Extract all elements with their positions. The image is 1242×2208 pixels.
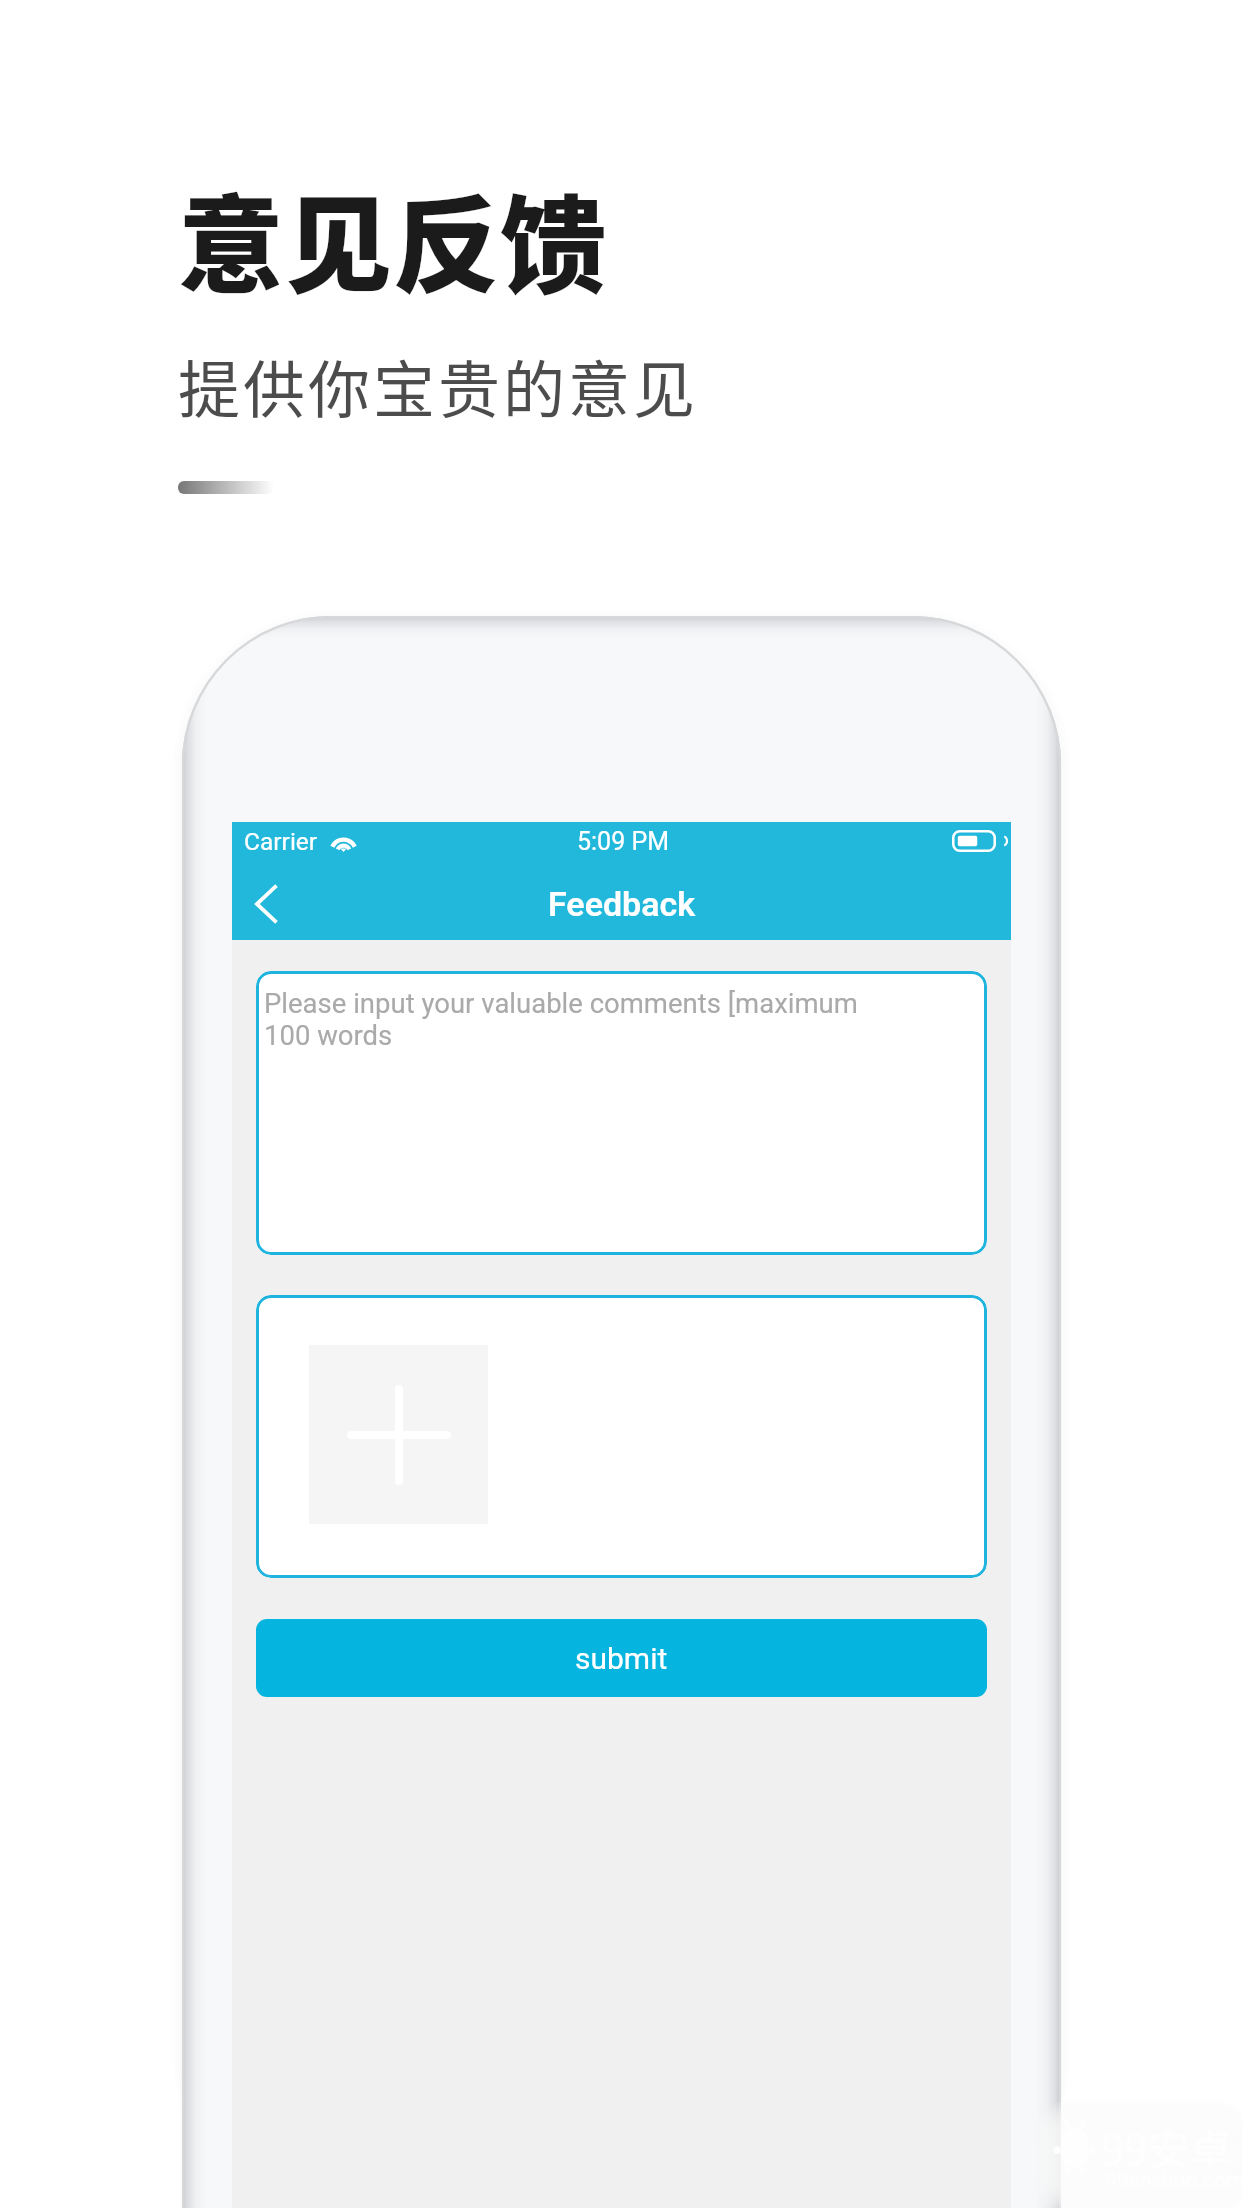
staticText: 提供你宝贵的意见 (178, 341, 699, 431)
staticText: Feedback (548, 884, 696, 924)
button[interactable]: submit (256, 1619, 987, 1697)
staticText: submit (575, 1641, 668, 1676)
staticText: Carrier (244, 827, 318, 856)
staticText: 100 words (264, 1019, 393, 1051)
staticText: 5:09 PM (577, 827, 670, 856)
staticText: Please input your valuable comments [max… (264, 987, 858, 1019)
staticText: 意见反馈 (178, 161, 608, 314)
button[interactable]: Back (228, 868, 304, 940)
button[interactable]: Please input your valuable comments [max… (256, 971, 987, 1255)
